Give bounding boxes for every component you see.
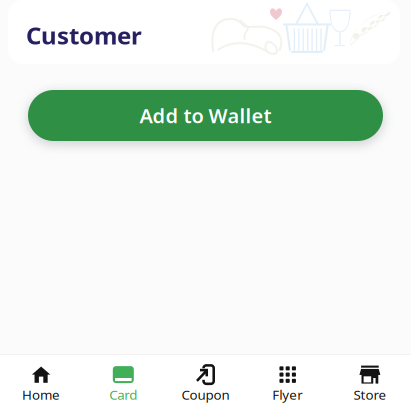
staticText: Coupon [181,386,229,403]
staticText: Flyer [272,386,303,403]
button[interactable]: Coupon [164,355,247,409]
button[interactable]: Store [329,355,411,409]
staticText: Card [109,386,137,403]
staticText: Customer [26,19,142,51]
staticText: Home [22,386,60,403]
staticText: Store [353,386,386,403]
button[interactable]: Flyer [247,355,329,409]
button[interactable]: Add to Wallet [28,90,383,141]
button[interactable]: Card [82,355,164,409]
staticText: Add to Wallet [139,102,271,129]
button[interactable]: Home [0,355,82,409]
